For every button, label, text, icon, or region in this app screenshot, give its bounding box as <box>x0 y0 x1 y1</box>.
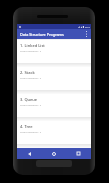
staticText: Total Programs : 2 <box>20 76 42 79</box>
button[interactable]: More options <box>82 29 91 39</box>
staticText: Total Programs : 3 <box>20 49 42 52</box>
button[interactable]: 4. Tree <box>17 121 91 144</box>
staticText: 1. Linked List <box>20 43 45 48</box>
button[interactable]: 1. Linked List <box>17 40 91 63</box>
staticText: 2. Stack <box>20 70 35 75</box>
button[interactable]: Home <box>41 148 66 159</box>
button[interactable]: Recents <box>66 148 91 159</box>
staticText: Total Programs : 2 <box>20 130 42 133</box>
staticText: 4. Tree <box>20 124 33 129</box>
staticText: 5:15 <box>85 25 90 28</box>
button[interactable]: 3. Queue <box>17 94 91 117</box>
staticText: Total Programs : 2 <box>20 103 42 106</box>
staticText: 3. Queue <box>20 97 38 102</box>
staticText: Data Structure Programs <box>20 32 64 37</box>
button[interactable]: 2. Stack <box>17 67 91 90</box>
button[interactable]: Back <box>17 148 41 159</box>
